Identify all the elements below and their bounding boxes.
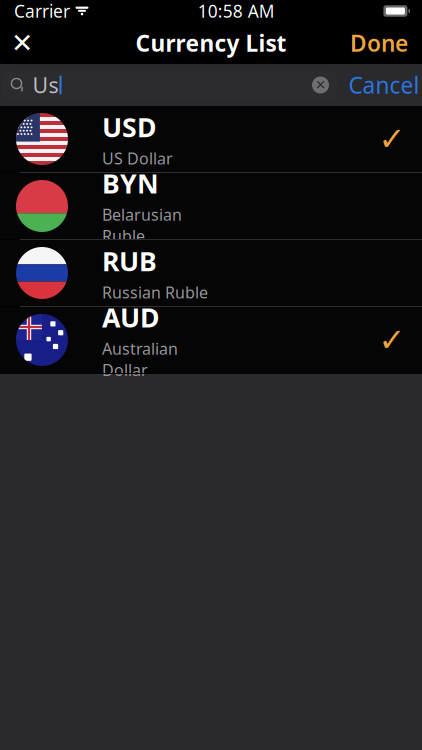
staticText: ✓ <box>378 322 405 358</box>
staticText: Australian Dollar <box>102 338 178 380</box>
button[interactable]: BYN <box>0 173 422 240</box>
staticText: USD <box>102 109 157 145</box>
staticText: US Dollar <box>102 148 173 169</box>
button[interactable]: Close <box>0 22 44 64</box>
button[interactable]: Cancel <box>337 68 422 102</box>
staticText: ✓ <box>378 121 405 157</box>
staticText: ✕ <box>11 28 33 58</box>
staticText: Us <box>32 71 58 99</box>
button[interactable]: RUB <box>0 240 422 307</box>
staticText: AUD <box>102 299 160 335</box>
staticText: ✕ <box>315 77 326 92</box>
staticText: Carrier <box>14 0 70 22</box>
button[interactable]: USD <box>0 106 422 173</box>
staticText: Currency List <box>135 28 286 58</box>
staticText: Done <box>350 28 408 58</box>
staticText: RUB <box>102 243 157 279</box>
button[interactable]: Done <box>336 22 422 64</box>
button[interactable]: Clear text <box>311 76 337 94</box>
staticText: Cancel <box>348 70 419 100</box>
button[interactable]: AUD <box>0 307 422 374</box>
staticText: Russian Ruble <box>102 282 208 303</box>
staticText: Belarusian Ruble <box>102 204 182 246</box>
staticText: 10:58 AM <box>198 0 275 22</box>
staticText: BYN <box>102 165 159 201</box>
